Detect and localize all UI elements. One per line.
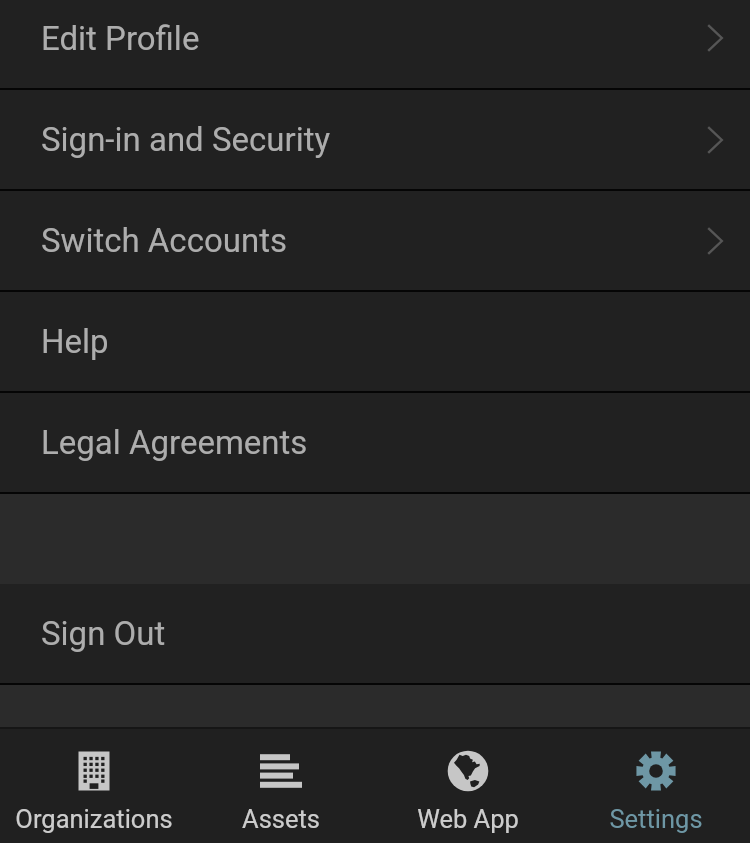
button[interactable]: Assets: [187, 729, 374, 843]
staticText: Assets: [242, 804, 320, 834]
staticText: Edit Profile: [41, 19, 200, 58]
staticText: Web App: [417, 804, 519, 834]
button[interactable]: Help: [0, 292, 750, 391]
button[interactable]: Switch Accounts: [0, 191, 750, 290]
staticText: Sign Out: [41, 614, 166, 653]
staticText: Sign-in and Security: [41, 120, 331, 159]
button[interactable]: Sign Out: [0, 584, 750, 683]
button[interactable]: Sign-in and Security: [0, 90, 750, 189]
staticText: Legal Agreements: [41, 423, 308, 462]
button[interactable]: Organizations: [0, 729, 187, 843]
button[interactable]: Settings: [562, 729, 750, 843]
button[interactable]: Edit Profile: [0, 0, 750, 88]
button[interactable]: Legal Agreements: [0, 393, 750, 492]
staticText: Switch Accounts: [41, 221, 287, 260]
staticText: Organizations: [15, 804, 173, 834]
staticText: Settings: [609, 804, 703, 834]
button[interactable]: Web App: [374, 729, 562, 843]
staticText: Help: [41, 322, 109, 361]
